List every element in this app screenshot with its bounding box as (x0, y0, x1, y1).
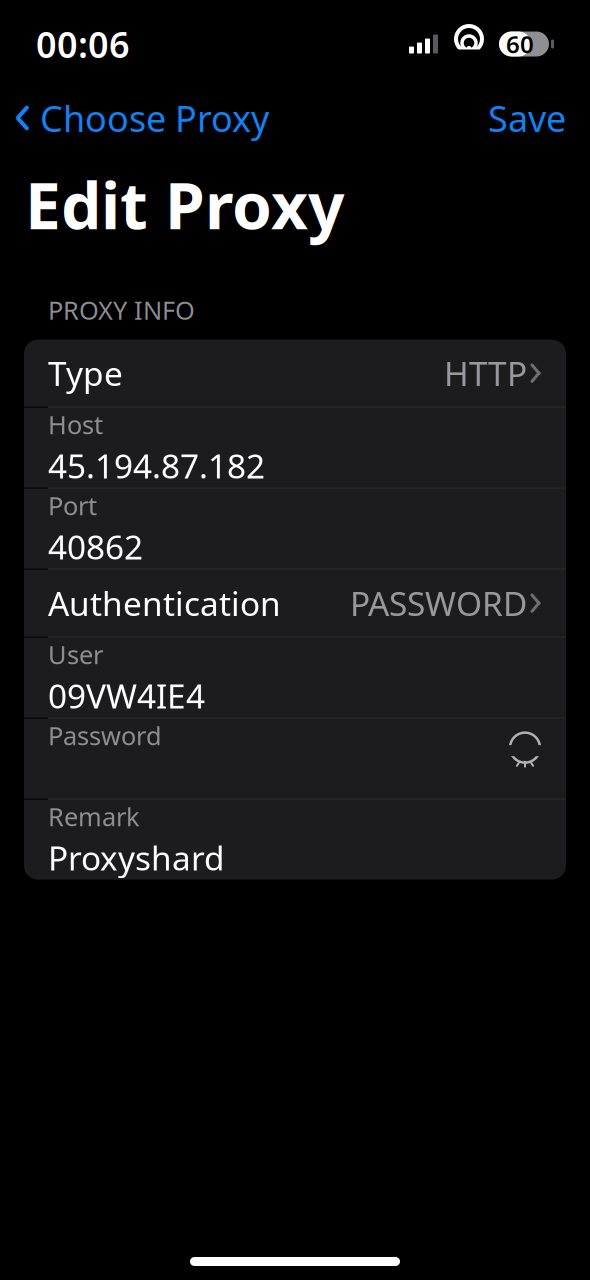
staticText: Choose Proxy (40, 94, 269, 142)
staticText: Edit Proxy (25, 162, 345, 247)
staticText: 60 (506, 28, 534, 60)
button[interactable]: Choose Proxy (14, 88, 269, 148)
button[interactable]: Save (488, 88, 566, 148)
staticText: HTTP (444, 351, 527, 395)
staticText: Type (48, 351, 123, 395)
staticText: User (48, 638, 103, 671)
staticText: Remark (48, 800, 140, 833)
staticText: 40862 (48, 524, 143, 569)
button[interactable]: Type (24, 340, 566, 407)
button[interactable]: Remark (24, 800, 566, 880)
staticText: Authentication (48, 581, 281, 625)
button[interactable]: User (24, 638, 566, 718)
staticText: PROXY INFO (48, 293, 195, 327)
staticText: Host (48, 408, 103, 441)
button[interactable]: Host (24, 408, 566, 488)
staticText: 09VW4IE4 (48, 673, 205, 718)
staticText: Save (488, 94, 566, 142)
staticText: 45.194.87.182 (48, 443, 265, 488)
staticText: Proxyshard (48, 835, 225, 880)
staticText: PASSWORD (350, 581, 527, 625)
button[interactable]: Authentication (24, 570, 566, 637)
staticText: Password (48, 719, 162, 752)
button[interactable]: Port (24, 489, 566, 569)
staticText: Port (48, 489, 97, 522)
staticText: 00:06 (36, 20, 130, 68)
button[interactable]: Password (24, 719, 566, 799)
